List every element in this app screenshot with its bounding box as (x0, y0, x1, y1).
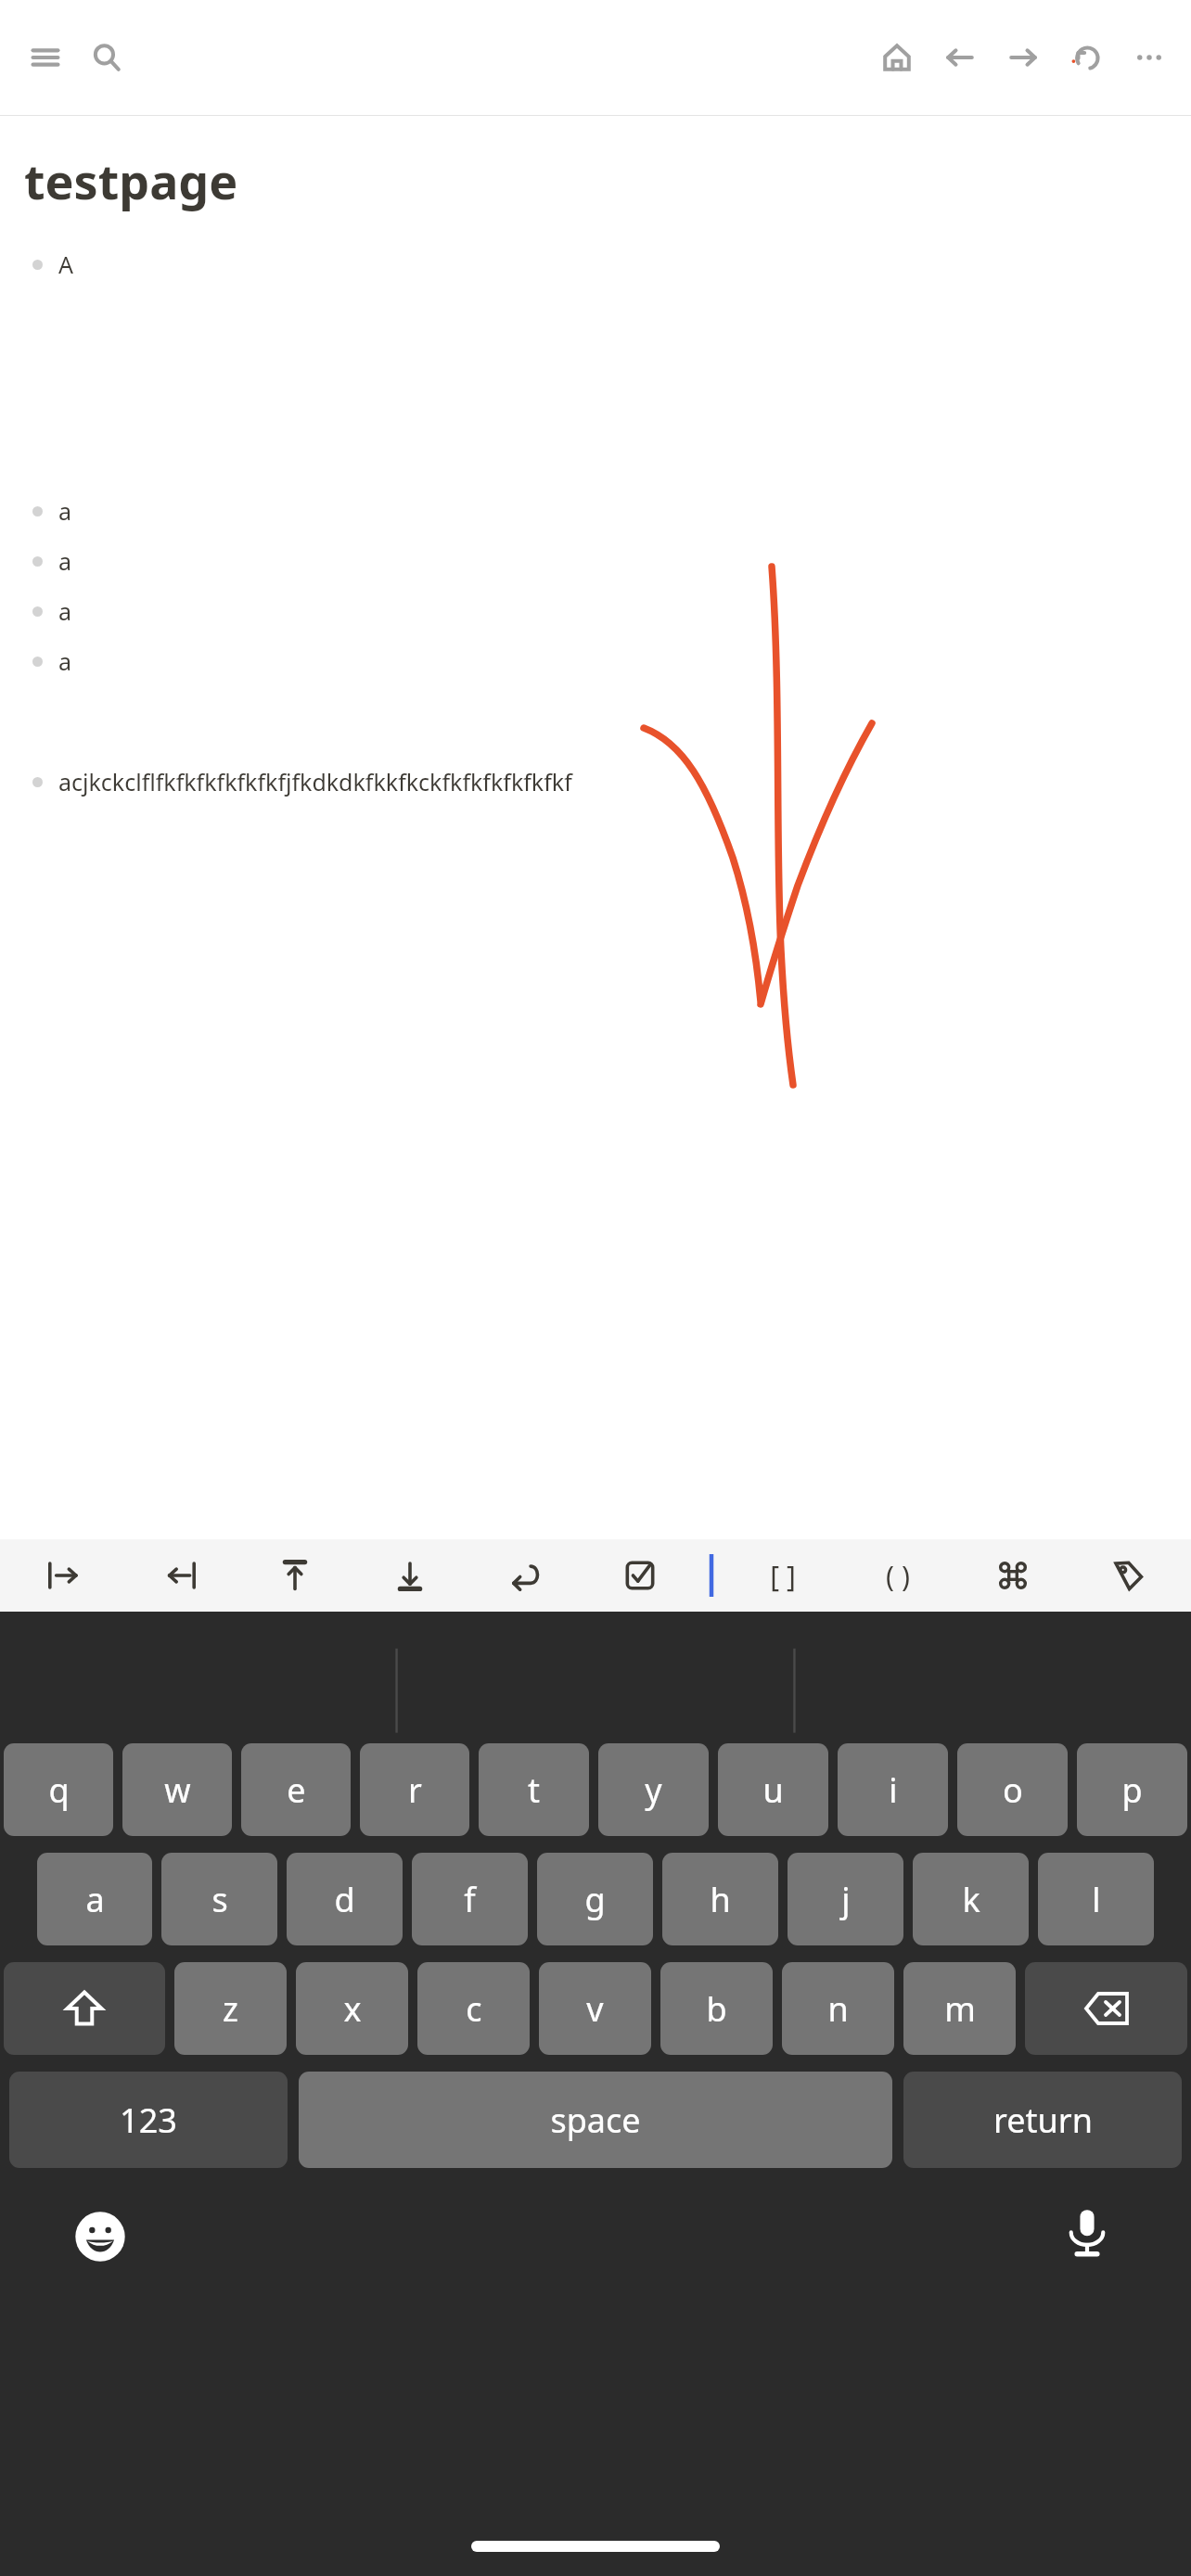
button[interactable]: More options (1124, 32, 1174, 83)
staticText: m (944, 1986, 976, 2032)
staticText: x (343, 1986, 362, 2032)
button[interactable]: Brackets (725, 1539, 840, 1612)
staticText: t (528, 1767, 540, 1813)
staticText: z (223, 1986, 238, 2032)
staticText: d (334, 1877, 355, 1922)
button[interactable]: m (903, 1962, 1016, 2055)
staticText: o (1003, 1767, 1023, 1813)
button[interactable]: Reload (1061, 32, 1111, 83)
staticText: c (466, 1986, 482, 2032)
staticText: 123 (120, 2098, 177, 2143)
button[interactable]: z (174, 1962, 287, 2055)
staticText: ( ) (886, 1557, 910, 1595)
button[interactable]: n (782, 1962, 894, 2055)
button[interactable]: a (0, 645, 1191, 677)
staticText: s (211, 1877, 228, 1922)
button[interactable]: a (0, 495, 1191, 527)
staticText: a (58, 595, 72, 627)
button[interactable]: space (299, 2072, 892, 2168)
button[interactable]: Menu (20, 32, 70, 83)
button[interactable]: acjkckclflfkfkfkfkfkfkfjfkdkdkfkkfkckfkf… (0, 766, 1191, 797)
button[interactable]: Parentheses (840, 1539, 955, 1612)
button[interactable]: Shift (4, 1962, 165, 2055)
staticText: i (889, 1767, 898, 1813)
staticText: p (1121, 1767, 1143, 1813)
staticText: return (993, 2098, 1093, 2143)
button[interactable]: k (913, 1853, 1029, 1945)
staticText: space (550, 2098, 641, 2143)
staticText: v (586, 1986, 604, 2032)
button[interactable]: w (122, 1743, 232, 1836)
staticText: k (962, 1877, 980, 1922)
button[interactable]: Voice input (1054, 2200, 1121, 2266)
button[interactable]: return (903, 2072, 1182, 2168)
button[interactable]: d (287, 1853, 403, 1945)
staticText: y (645, 1767, 662, 1813)
button[interactable]: c (417, 1962, 530, 2055)
staticText: a (58, 495, 72, 527)
staticText: A (58, 249, 73, 280)
button[interactable]: Backspace (1025, 1962, 1187, 2055)
button[interactable]: Checkbox (583, 1539, 698, 1612)
button[interactable]: f (412, 1853, 528, 1945)
staticText: q (48, 1767, 70, 1813)
button[interactable]: Tag (1070, 1539, 1185, 1612)
button[interactable]: j (788, 1853, 903, 1945)
staticText: u (762, 1767, 784, 1813)
button[interactable]: 123 (9, 2072, 288, 2168)
button[interactable]: q (4, 1743, 113, 1836)
button[interactable]: testpage (24, 147, 238, 213)
button[interactable]: New line (467, 1539, 583, 1612)
staticText: h (710, 1877, 731, 1922)
button[interactable]: A (0, 249, 1191, 280)
staticText: acjkckclflfkfkfkfkfkfkfjfkdkdkfkkfkckfkf… (58, 766, 572, 797)
button[interactable]: r (360, 1743, 469, 1836)
button[interactable]: s (161, 1853, 277, 1945)
button[interactable]: y (598, 1743, 709, 1836)
button[interactable]: i (838, 1743, 948, 1836)
button[interactable]: e (241, 1743, 351, 1836)
button[interactable]: a (0, 595, 1191, 627)
staticText: e (287, 1767, 306, 1813)
button[interactable]: p (1077, 1743, 1187, 1836)
staticText: [ ] (770, 1557, 796, 1595)
button[interactable]: g (537, 1853, 653, 1945)
button[interactable]: l (1038, 1853, 1154, 1945)
staticText: w (164, 1767, 191, 1813)
button[interactable]: a (37, 1853, 152, 1945)
button[interactable]: u (718, 1743, 828, 1836)
button[interactable]: t (479, 1743, 589, 1836)
button[interactable]: x (296, 1962, 408, 2055)
button[interactable]: Back (935, 32, 985, 83)
staticText: j (841, 1877, 851, 1922)
button[interactable]: a (0, 545, 1191, 577)
button[interactable]: v (539, 1962, 651, 2055)
staticText: a (58, 645, 72, 677)
staticText: b (706, 1986, 727, 2032)
button[interactable]: Forward (998, 32, 1048, 83)
staticText: l (1092, 1877, 1101, 1922)
button[interactable]: Emoji (67, 2203, 134, 2270)
staticText: r (408, 1767, 422, 1813)
button[interactable]: Search (82, 32, 132, 83)
button[interactable]: Outdent (122, 1539, 237, 1612)
staticText: a (85, 1877, 105, 1922)
button[interactable]: b (660, 1962, 773, 2055)
button[interactable]: Move up (237, 1539, 352, 1612)
button[interactable]: Command (955, 1539, 1070, 1612)
staticText: n (827, 1986, 849, 2032)
button[interactable]: o (957, 1743, 1068, 1836)
staticText: f (464, 1877, 476, 1922)
button[interactable]: Home (872, 32, 922, 83)
staticText: g (584, 1877, 606, 1922)
staticText: a (58, 545, 72, 577)
button[interactable]: h (662, 1853, 778, 1945)
button[interactable]: Move down (352, 1539, 467, 1612)
button[interactable]: Indent (6, 1539, 122, 1612)
